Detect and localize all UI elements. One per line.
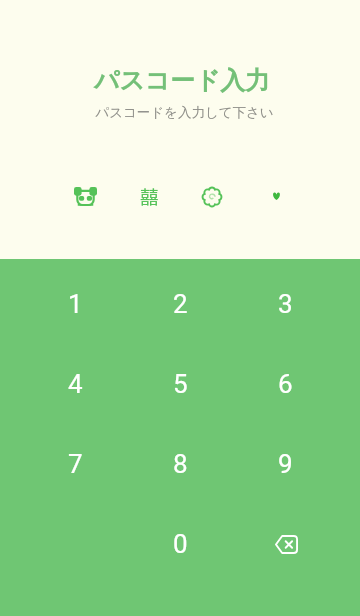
button[interactable]: Delete	[233, 504, 338, 584]
button[interactable]: 8	[128, 424, 233, 504]
staticText: 0	[173, 529, 188, 559]
button[interactable]: 3	[233, 264, 338, 344]
other: Passcode character 4	[260, 180, 292, 212]
other: Passcode character 2	[133, 180, 165, 212]
button[interactable]: 5	[128, 344, 233, 424]
staticText: 6	[278, 369, 293, 399]
staticText: 4	[68, 369, 83, 399]
staticText: パスコードを入力して下さい	[95, 104, 274, 121]
staticText: 3	[278, 289, 293, 319]
button[interactable]: 7	[22, 424, 128, 504]
button[interactable]: 6	[233, 344, 338, 424]
button[interactable]: 0	[128, 504, 233, 584]
button[interactable]: 2	[128, 264, 233, 344]
button[interactable]: 1	[22, 264, 128, 344]
staticText: 5	[173, 369, 188, 399]
staticText: 9	[278, 449, 293, 479]
other: Passcode character 3	[196, 181, 228, 213]
staticText: 7	[68, 449, 83, 479]
staticText: 2	[173, 289, 188, 319]
button[interactable]: 4	[22, 344, 128, 424]
staticText: 8	[173, 449, 188, 479]
staticText: パスコード入力	[94, 65, 270, 96]
staticText: 1	[68, 289, 83, 319]
other: Passcode character 1	[69, 180, 101, 212]
staticText: 囍	[140, 183, 159, 210]
button[interactable]: 9	[233, 424, 338, 504]
